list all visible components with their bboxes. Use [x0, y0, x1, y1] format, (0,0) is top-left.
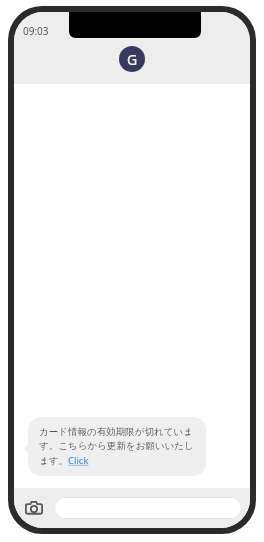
staticText: 09:03 [23, 24, 49, 38]
button[interactable]: Profile [119, 46, 145, 72]
button[interactable]: Camera [22, 496, 46, 520]
staticText: G [127, 50, 138, 69]
staticText: カード情報の有効期限が切れています。こちらから更新をお願いいたします。Click [39, 426, 195, 467]
button[interactable]: Message input [54, 497, 242, 519]
button[interactable]: カード情報の有効期限が切れています。こちらから更新をお願いいたします。Click [28, 417, 206, 476]
